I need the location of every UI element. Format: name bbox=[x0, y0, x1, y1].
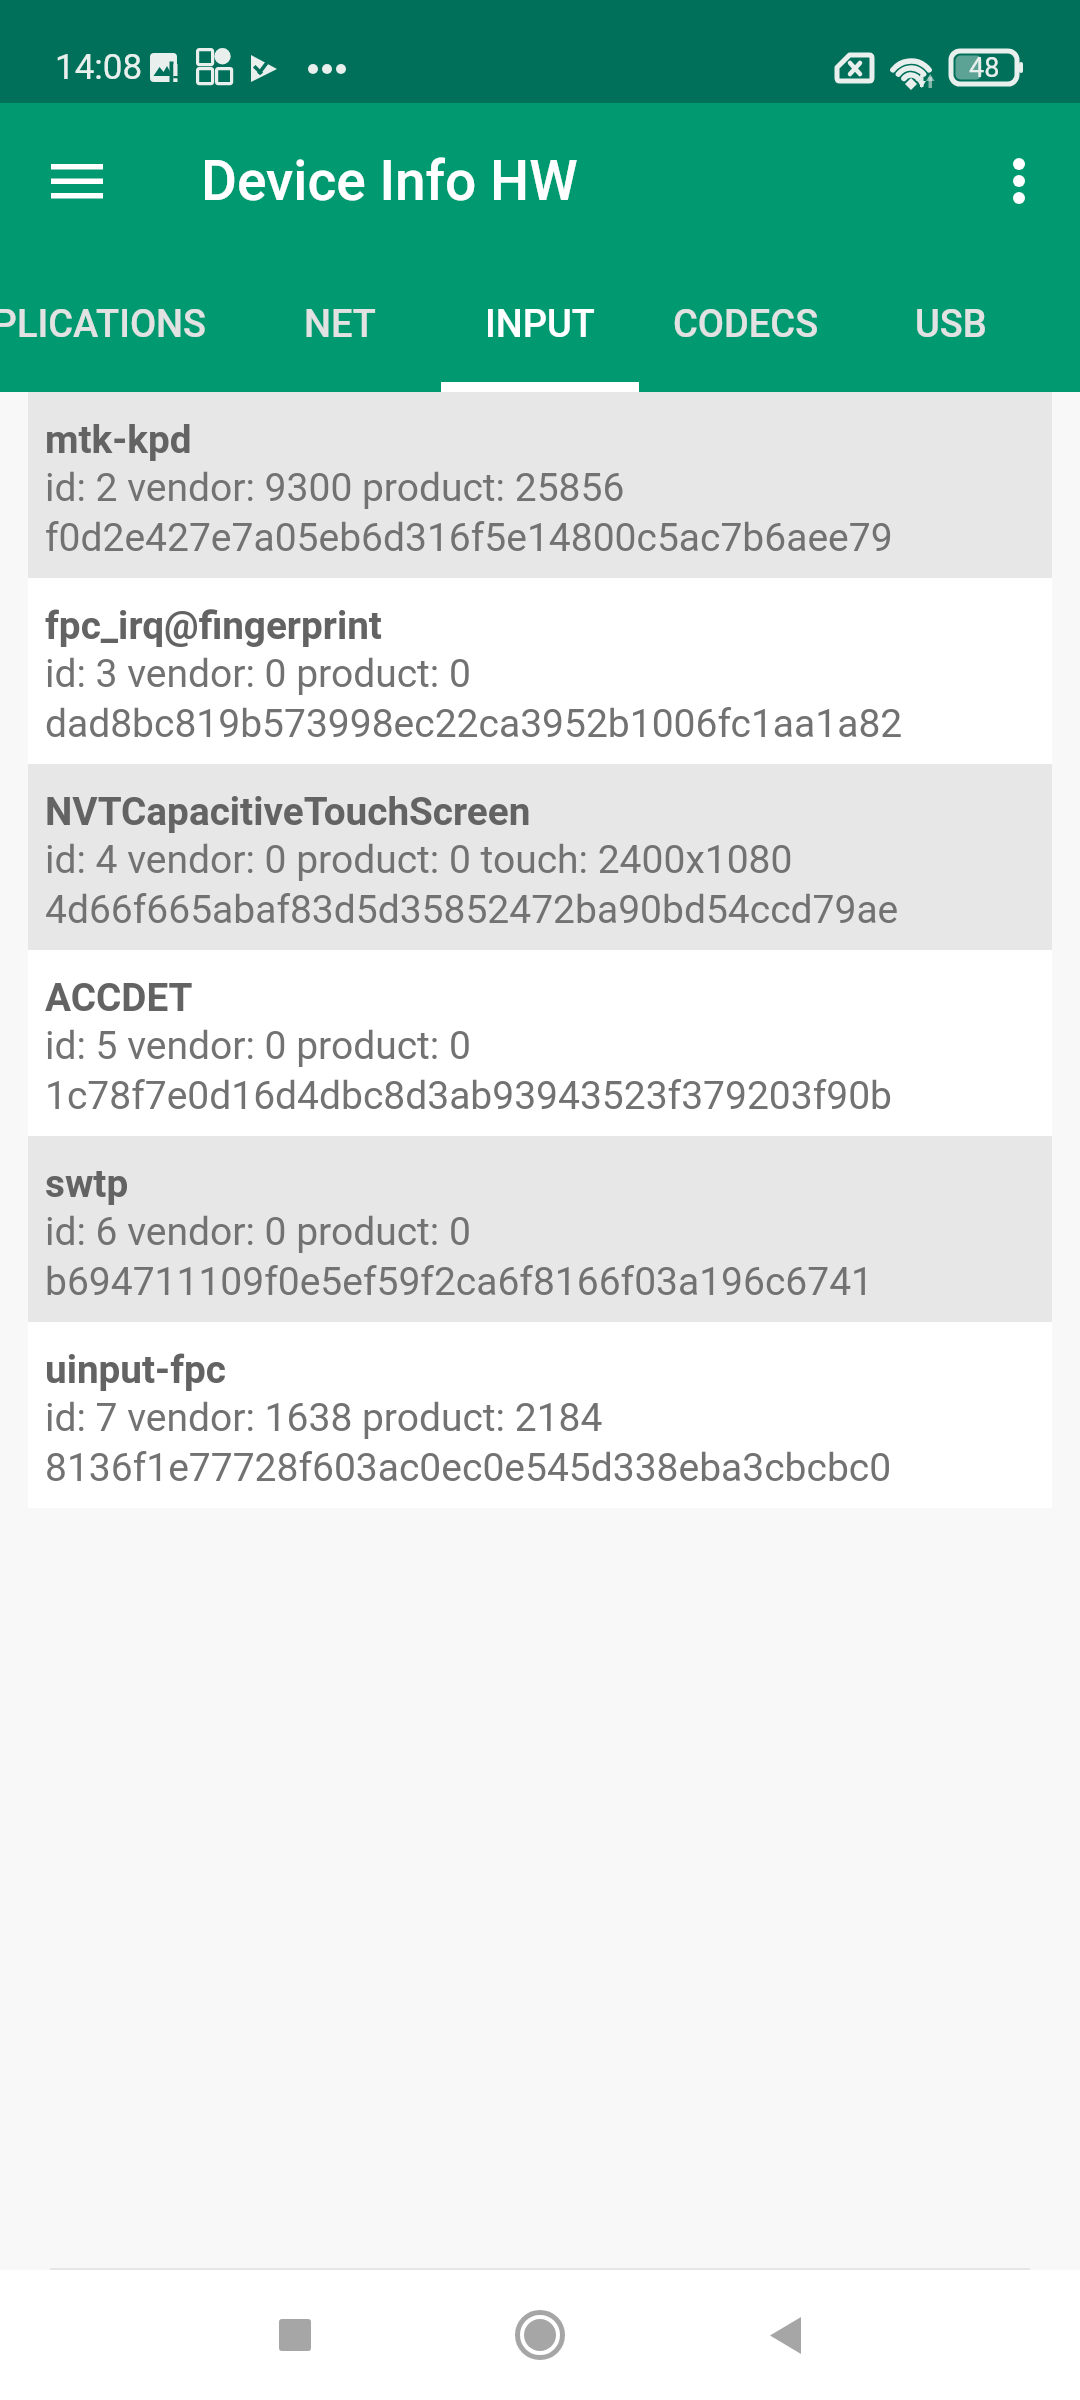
staticText: b694711109f0e5ef59f2ca6f8166f03a196c6741 bbox=[45, 1259, 874, 1305]
staticText: id: 2 vendor: 9300 product: 25856 bbox=[45, 465, 625, 511]
button[interactable]: NET bbox=[240, 258, 440, 392]
staticText: swtp bbox=[45, 1161, 129, 1206]
staticText: id: 3 vendor: 0 product: 0 bbox=[45, 651, 471, 697]
staticText: CODECS bbox=[673, 302, 819, 347]
button[interactable]: Back bbox=[741, 2291, 829, 2379]
staticText: dad8bc819b573998ec22ca3952b1006fc1aa1a82 bbox=[45, 701, 903, 747]
button[interactable]: More options bbox=[967, 129, 1071, 233]
staticText: 8136f1e77728f603ac0ec0e545d338eba3cbcbc0 bbox=[45, 1445, 892, 1491]
staticText: 1c78f7e0d16d4dbc8d3ab93943523f379203f90b bbox=[45, 1073, 892, 1119]
staticText: id: 4 vendor: 0 product: 0 touch: 2400x1… bbox=[45, 837, 793, 883]
button[interactable]: uinput-fpc bbox=[28, 1322, 1052, 1508]
button[interactable]: INPUT bbox=[441, 258, 639, 392]
button[interactable]: USB bbox=[851, 258, 1051, 392]
button[interactable]: CODECS bbox=[641, 258, 851, 392]
staticText: 14:08 bbox=[55, 47, 143, 88]
button[interactable]: NVTCapacitiveTouchScreen bbox=[28, 764, 1052, 950]
staticText: mtk-kpd bbox=[45, 417, 192, 462]
button[interactable]: swtp bbox=[28, 1136, 1052, 1322]
staticText: Device Info HW bbox=[201, 149, 578, 213]
button[interactable]: APPLICATIONS bbox=[0, 258, 240, 392]
button[interactable]: mtk-kpd bbox=[28, 392, 1052, 578]
staticText: NET bbox=[304, 302, 376, 347]
staticText: 4d66f665abaf83d5d35852472ba90bd54ccd79ae bbox=[45, 887, 899, 933]
staticText: id: 7 vendor: 1638 product: 2184 bbox=[45, 1395, 603, 1441]
staticText: USB bbox=[915, 302, 987, 347]
staticText: uinput-fpc bbox=[45, 1347, 226, 1392]
staticText: NVTCapacitiveTouchScreen bbox=[45, 789, 531, 834]
button[interactable]: Home bbox=[496, 2291, 584, 2379]
button[interactable]: Recent apps bbox=[251, 2291, 339, 2379]
staticText: id: 6 vendor: 0 product: 0 bbox=[45, 1209, 471, 1255]
staticText: f0d2e427e7a05eb6d316f5e14800c5ac7b6aee79 bbox=[45, 515, 893, 561]
staticText: APPLICATIONS bbox=[0, 302, 207, 347]
staticText: INPUT bbox=[485, 302, 595, 347]
button[interactable]: Open navigation drawer bbox=[25, 129, 129, 233]
button[interactable]: ACCDET bbox=[28, 950, 1052, 1136]
button[interactable]: fpc_irq@fingerprint bbox=[28, 578, 1052, 764]
staticText: fpc_irq@fingerprint bbox=[45, 603, 382, 648]
staticText: 48 bbox=[969, 52, 1000, 84]
staticText: ACCDET bbox=[45, 975, 193, 1020]
staticText: id: 5 vendor: 0 product: 0 bbox=[45, 1023, 471, 1069]
